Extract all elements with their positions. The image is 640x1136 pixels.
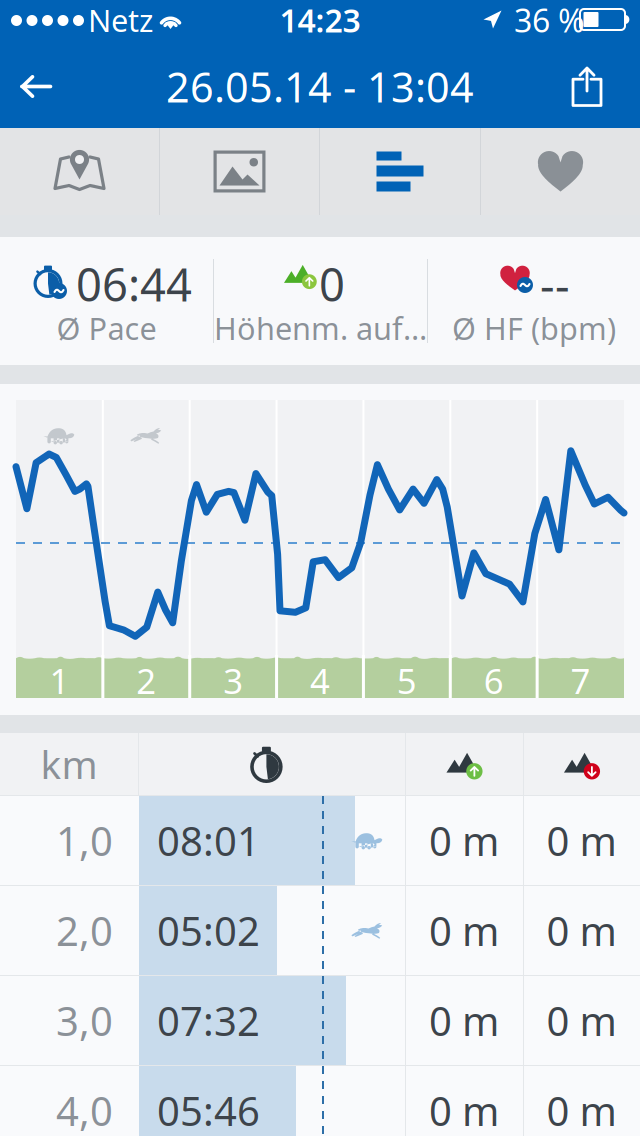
button[interactable]: 3,0 bbox=[0, 976, 640, 1065]
staticText: 05:46 bbox=[157, 1084, 260, 1136]
staticText: 7 bbox=[571, 657, 591, 703]
staticText: Ø Pace bbox=[56, 308, 156, 348]
button[interactable]: Share bbox=[0, 45, 86, 126]
staticText: Ø HF (bpm) bbox=[452, 308, 616, 348]
staticText: 0 m bbox=[429, 814, 499, 867]
staticText: 1,0 bbox=[56, 814, 113, 867]
staticText: 3 bbox=[223, 657, 243, 703]
button[interactable]: Heart rate bbox=[481, 128, 640, 215]
staticText: 0 m bbox=[429, 994, 499, 1047]
button[interactable]: 2,0 bbox=[0, 886, 640, 975]
staticText: 2,0 bbox=[56, 904, 113, 957]
staticText: 5 bbox=[397, 657, 417, 703]
staticText: 0 m bbox=[546, 814, 616, 867]
staticText: Netz bbox=[88, 0, 153, 40]
staticText: 0 m bbox=[546, 904, 616, 957]
staticText: 0 m bbox=[429, 904, 499, 957]
staticText: 2 bbox=[136, 657, 156, 703]
staticText: 26.05.14 - 13:04 bbox=[166, 59, 474, 114]
button[interactable]: 4,0 bbox=[0, 1066, 640, 1136]
staticText: 0 bbox=[319, 254, 345, 314]
staticText: 4 bbox=[310, 657, 330, 703]
button[interactable]: Map bbox=[0, 128, 159, 215]
staticText: 4,0 bbox=[56, 1084, 113, 1136]
staticText: 1 bbox=[49, 657, 69, 703]
staticText: 3,0 bbox=[56, 994, 113, 1047]
staticText: 36 % bbox=[514, 0, 585, 41]
staticText: 0 m bbox=[546, 994, 616, 1047]
button[interactable]: 1,0 bbox=[0, 796, 640, 885]
staticText: 08:01 bbox=[157, 814, 260, 867]
staticText: 14:23 bbox=[279, 0, 360, 41]
staticText: 0 m bbox=[546, 1084, 616, 1136]
staticText: 6 bbox=[484, 657, 504, 703]
staticText: -- bbox=[540, 254, 570, 314]
staticText: 0 m bbox=[429, 1084, 499, 1136]
staticText: 07:32 bbox=[157, 994, 260, 1047]
staticText: Höhenm. aufwä… bbox=[214, 308, 428, 348]
staticText: 05:02 bbox=[157, 904, 260, 957]
staticText: km bbox=[40, 738, 97, 790]
button[interactable]: Splits chart bbox=[320, 128, 480, 215]
button[interactable]: Back bbox=[0, 45, 72, 128]
button[interactable]: Photos bbox=[160, 128, 319, 215]
staticText: 06:44 bbox=[76, 254, 192, 314]
